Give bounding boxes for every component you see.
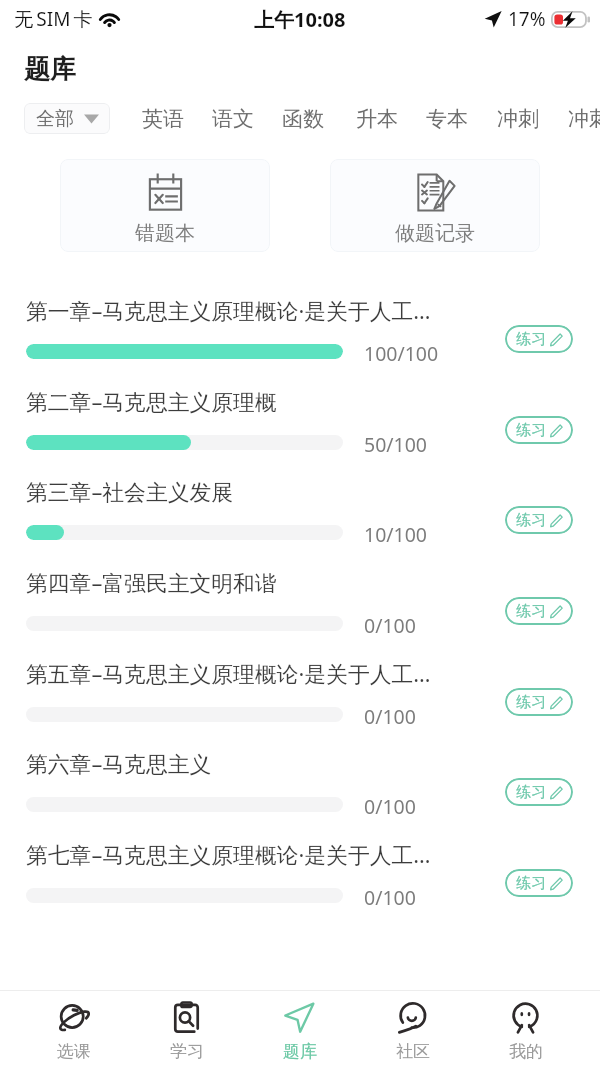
button[interactable]: 第五章–马克思主义原理概论·是关于人工… <box>0 647 600 737</box>
staticText: 题库 <box>24 53 76 86</box>
staticText: 第一章–马克思主义原理概论·是关于人工… <box>26 296 446 326</box>
button[interactable]: 学习 <box>130 990 243 1067</box>
button[interactable]: 第二章–马克思主义原理概 <box>0 375 600 465</box>
staticText: 我的 <box>509 1041 543 1062</box>
button[interactable]: 做题记录 <box>330 159 540 252</box>
staticText: 上午10:08 <box>254 6 346 33</box>
staticText: 第二章–马克思主义原理概 <box>26 387 446 417</box>
staticText: 第四章–富强民主文明和谐 <box>26 568 446 598</box>
button[interactable]: 练习 <box>505 325 573 353</box>
staticText: 英语 <box>142 106 184 132</box>
staticText: 练习 <box>516 330 546 349</box>
button[interactable]: 冲刺 <box>554 103 600 134</box>
button[interactable]: 语文 <box>198 103 268 134</box>
button[interactable]: 第三章–社会主义发展 <box>0 465 600 555</box>
staticText: 第五章–马克思主义原理概论·是关于人工… <box>26 659 446 689</box>
staticText: 练习 <box>516 693 546 712</box>
staticText: 0/100 <box>364 793 416 820</box>
button[interactable]: 练习 <box>505 869 573 897</box>
button[interactable]: 选课 <box>18 990 130 1067</box>
staticText: 无 SIM 卡 <box>11 6 93 32</box>
button[interactable]: 练习 <box>505 778 573 806</box>
staticText: 错题本 <box>135 221 195 246</box>
staticText: 练习 <box>516 783 546 802</box>
staticText: 50/100 <box>364 431 428 458</box>
staticText: 17% <box>508 6 546 32</box>
button[interactable]: 练习 <box>505 506 573 534</box>
staticText: 冲刺 <box>497 106 539 132</box>
button[interactable]: 专本 <box>412 103 482 134</box>
button[interactable]: 我的 <box>469 990 582 1067</box>
button[interactable]: 练习 <box>505 688 573 716</box>
staticText: 冲刺 <box>568 106 600 132</box>
staticText: 题库 <box>283 1041 317 1062</box>
staticText: 0/100 <box>364 703 416 730</box>
staticText: 第七章–马克思主义原理概论·是关于人工… <box>26 840 446 870</box>
button[interactable]: 全部 筛选 <box>24 103 110 134</box>
staticText: 第六章–马克思主义 <box>26 749 446 779</box>
button[interactable]: 第一章–马克思主义原理概论·是关于人工… <box>0 284 600 374</box>
staticText: 升本 <box>356 106 398 132</box>
staticText: 练习 <box>516 874 546 893</box>
staticText: 全部 <box>36 107 74 131</box>
staticText: 专本 <box>426 106 468 132</box>
staticText: 练习 <box>516 511 546 530</box>
staticText: 语文 <box>212 106 254 132</box>
button[interactable]: 练习 <box>505 416 573 444</box>
staticText: 做题记录 <box>395 221 475 246</box>
button[interactable]: 英语 <box>128 103 198 134</box>
staticText: 函数 <box>282 106 324 132</box>
staticText: 学习 <box>170 1041 204 1062</box>
staticText: 选课 <box>57 1041 91 1062</box>
button[interactable]: 第七章–马克思主义原理概论·是关于人工… <box>0 828 600 918</box>
staticText: 练习 <box>516 602 546 621</box>
staticText: 0/100 <box>364 612 416 639</box>
button[interactable]: 题库 <box>243 990 356 1067</box>
button[interactable]: 练习 <box>505 597 573 625</box>
staticText: 10/100 <box>364 521 428 548</box>
button[interactable]: 社区 <box>356 990 469 1067</box>
button[interactable]: 冲刺 <box>483 103 553 134</box>
staticText: 社区 <box>396 1041 430 1062</box>
staticText: 练习 <box>516 421 546 440</box>
button[interactable]: 升本 <box>342 103 412 134</box>
button[interactable]: 错题本 <box>60 159 270 252</box>
button[interactable]: 第六章–马克思主义 <box>0 737 600 827</box>
button[interactable]: 第四章–富强民主文明和谐 <box>0 556 600 646</box>
button[interactable]: 函数 <box>268 103 338 134</box>
staticText: 第三章–社会主义发展 <box>26 477 446 507</box>
staticText: 0/100 <box>364 884 416 911</box>
staticText: 100/100 <box>364 340 439 367</box>
